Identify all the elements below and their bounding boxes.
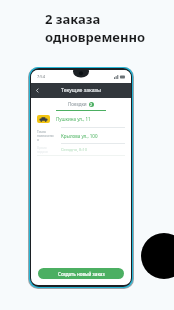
staticText: 2 [90,102,93,107]
button[interactable]: Поездки [31,98,131,110]
staticText: назначения [37,134,55,142]
staticText: Поездки [68,101,87,107]
staticText: Пушкина ул., 11 [56,116,91,122]
staticText: Текущие заказы [61,87,101,94]
button[interactable]: Создать новый заказ [38,268,124,279]
staticText: одновременно [45,28,146,46]
staticText: 7:54 [37,74,45,79]
staticText: Сегодня, 8:10 [61,147,88,152]
staticText: Крылова ул., 100 [61,133,98,139]
button[interactable]: Время [31,144,131,155]
staticText: Точка [37,130,46,134]
staticText: подачи [37,150,48,154]
staticText: Время [37,146,47,150]
staticText: Создать новый заказ [58,271,105,277]
button[interactable]: Назад [31,84,44,97]
button[interactable]: Пушкина ул., 11 [31,111,131,127]
button[interactable]: Точка [31,128,131,143]
staticText: 2 заказа [45,10,101,28]
